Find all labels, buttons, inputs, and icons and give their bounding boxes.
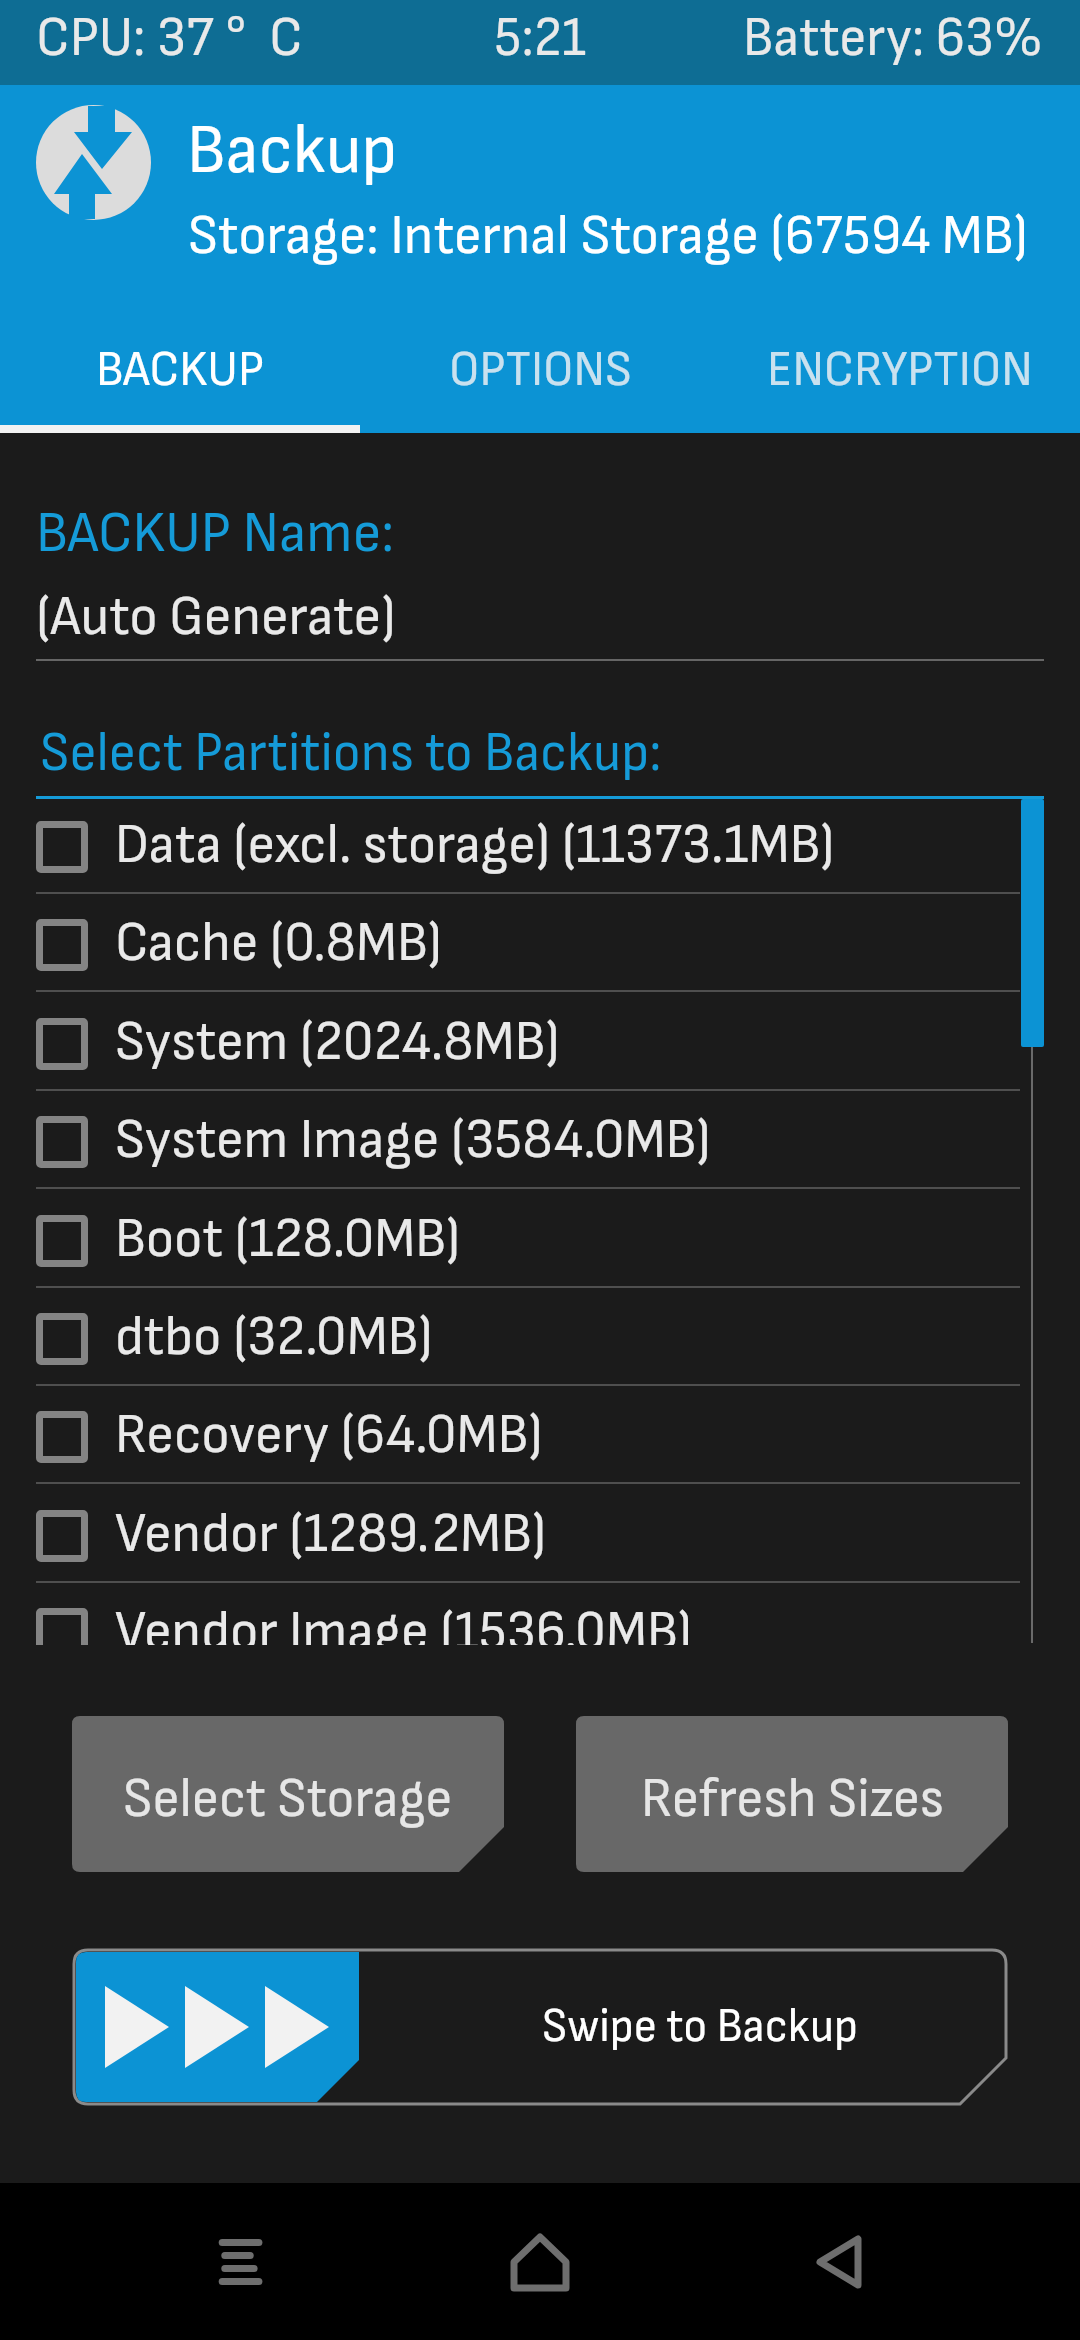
staticText: Select Storage bbox=[123, 1766, 453, 1832]
button[interactable]: BACKUP bbox=[0, 330, 360, 410]
button[interactable]: Swipe to Backup bbox=[72, 1948, 1008, 2106]
staticText: Select Partitions to Backup: bbox=[40, 720, 662, 786]
button[interactable]: Cache (0.8MB) bbox=[0, 894, 1080, 992]
staticText: Vendor Image (1536.0MB) bbox=[115, 1599, 692, 1645]
staticText: ENCRYPTION bbox=[767, 340, 1033, 400]
staticText: Data (excl. storage) (11373.1MB) bbox=[115, 812, 835, 879]
staticText: dtbo (32.0MB) bbox=[115, 1304, 433, 1371]
button[interactable]: Boot (128.0MB) bbox=[0, 1190, 1080, 1288]
staticText: Vendor (1289.2MB) bbox=[115, 1501, 547, 1568]
staticText: 5:21 bbox=[494, 5, 586, 71]
staticText: Battery: 63% bbox=[743, 5, 1043, 71]
button[interactable]: OPTIONS bbox=[360, 330, 720, 410]
button[interactable]: Refresh Sizes bbox=[576, 1716, 1008, 1872]
staticText: Swipe to Backup bbox=[542, 1999, 858, 2055]
button[interactable]: Vendor (1289.2MB) bbox=[0, 1485, 1080, 1583]
staticText: Recovery (64.0MB) bbox=[115, 1402, 543, 1469]
staticText: (Auto Generate) bbox=[36, 584, 396, 651]
staticText: CPU: 37 ° C bbox=[36, 5, 303, 72]
button[interactable]: Vendor Image (1536.0MB) bbox=[0, 1583, 1080, 1645]
staticText: Backup bbox=[187, 109, 398, 189]
staticText: Refresh Sizes bbox=[641, 1766, 944, 1832]
staticText: Storage: Internal Storage (67594 MB) bbox=[188, 203, 1028, 270]
button[interactable]: System (2024.8MB) bbox=[0, 993, 1080, 1091]
staticText: BACKUP bbox=[96, 340, 264, 400]
staticText: System (2024.8MB) bbox=[115, 1009, 560, 1076]
button[interactable]: ENCRYPTION bbox=[720, 330, 1080, 410]
staticText: OPTIONS bbox=[449, 340, 632, 400]
button[interactable]: dtbo (32.0MB) bbox=[0, 1288, 1080, 1386]
staticText: Cache (0.8MB) bbox=[115, 910, 442, 977]
staticText: Boot (128.0MB) bbox=[115, 1206, 461, 1273]
button[interactable]: (Auto Generate) bbox=[36, 577, 636, 657]
button[interactable]: Data (excl. storage) (11373.1MB) bbox=[0, 799, 1080, 894]
button[interactable] bbox=[150, 2183, 330, 2340]
button[interactable]: Recovery (64.0MB) bbox=[0, 1386, 1080, 1484]
button[interactable]: Select Storage bbox=[72, 1716, 504, 1872]
staticText: BACKUP Name: bbox=[36, 499, 395, 569]
button[interactable]: System Image (3584.0MB) bbox=[0, 1091, 1080, 1189]
button[interactable] bbox=[750, 2183, 930, 2340]
button[interactable] bbox=[450, 2183, 630, 2340]
staticText: System Image (3584.0MB) bbox=[115, 1107, 711, 1174]
